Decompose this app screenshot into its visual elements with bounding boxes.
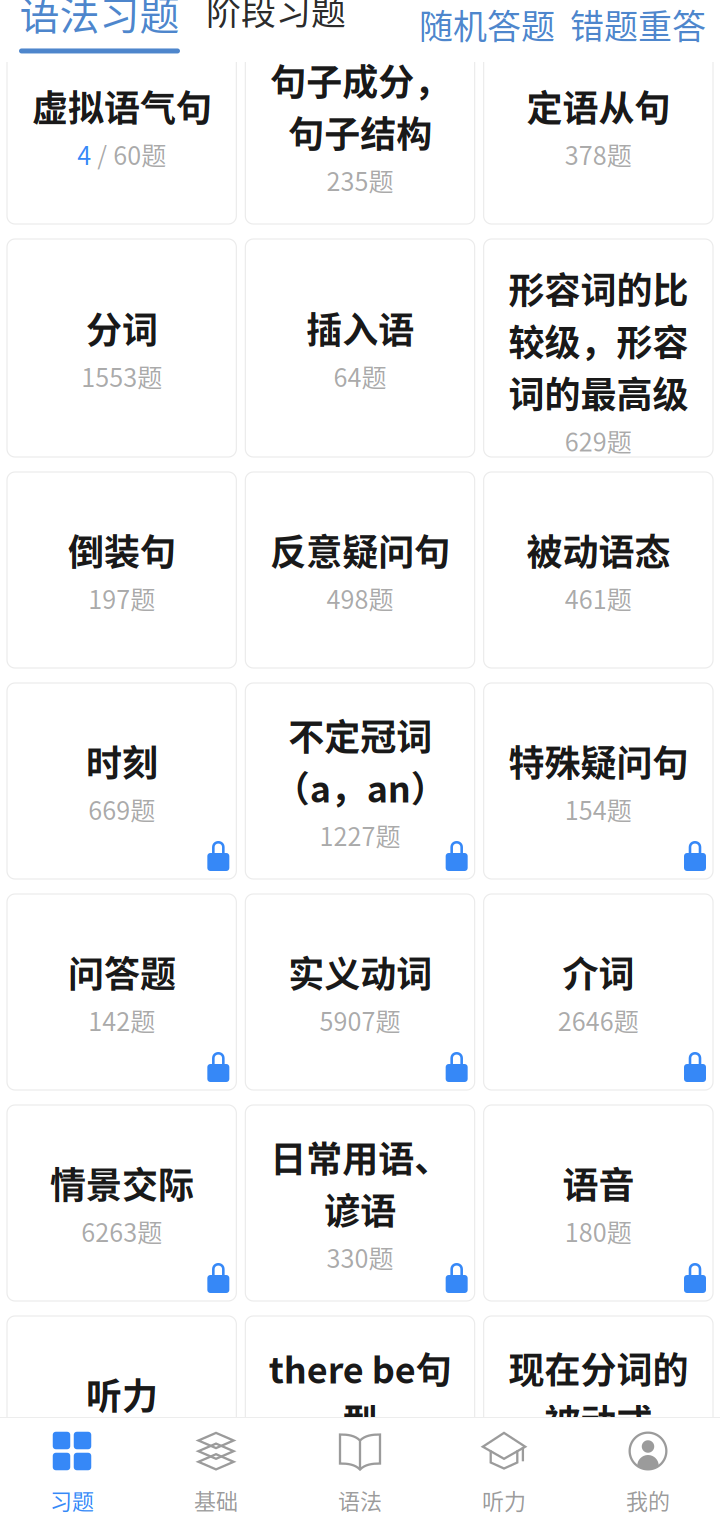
staticText: there be句型 [268,1342,451,1446]
staticText: 2870题 [81,1424,162,1460]
button[interactable]: 基础 [144,1418,288,1516]
staticText: 实义动词 [288,946,432,998]
staticText: 介词 [562,946,634,998]
staticText: 日常用语、谚语 [270,1131,450,1235]
staticText: 阶段习题 [206,0,346,35]
staticText: 629题 [565,422,632,459]
staticText: 1227题 [319,817,400,853]
button[interactable]: 语法 [288,1418,432,1516]
staticText: 197题 [88,580,155,616]
button[interactable]: 随机答题 [412,0,562,49]
button[interactable]: 实义动词 [245,894,475,1090]
staticText: 反意疑问句 [270,524,450,576]
staticText: 错题重答 [570,0,706,49]
staticText: 64题 [333,358,386,394]
button[interactable]: 被动语态 [484,472,713,668]
staticText: 基础 [194,1484,238,1516]
staticText: 情景交际 [50,1157,194,1209]
staticText: 语音 [562,1157,634,1209]
staticText: 378题 [565,136,632,172]
staticText: 随机答题 [419,0,555,49]
button[interactable]: 虚拟语气句 [7,28,236,224]
staticText: / [97,136,107,172]
staticText: 插入语 [306,302,414,354]
staticText: 句子成分，句子结构 [270,54,450,158]
button[interactable]: 倒装句 [7,472,236,668]
button[interactable]: 插入语 [245,239,475,457]
staticText: 669题 [88,791,155,827]
staticText: 60题 [113,136,166,172]
staticText: 266题 [326,1450,393,1486]
staticText: 5907题 [319,1002,400,1038]
staticText: 语法习题 [19,0,179,41]
staticText: 听力 [482,1484,526,1516]
staticText: 330题 [326,1239,393,1275]
button[interactable]: 情景交际 [7,1105,236,1301]
staticText: 特殊疑问句 [508,735,688,787]
staticText: 不定冠词（a，an） [273,709,446,813]
staticText: 4 [77,136,91,172]
staticText: 1553题 [81,358,162,394]
staticText: 习题 [50,1484,94,1516]
button[interactable]: 定语从句 [484,28,713,224]
button[interactable]: 介词 [484,894,713,1090]
staticText: 461题 [565,580,632,616]
staticText: 形容词的比较级，形容词的最高级 [508,262,688,418]
button[interactable]: 我的 [576,1418,720,1516]
staticText: 6263题 [81,1213,162,1249]
staticText: 时刻 [86,735,158,787]
button[interactable]: 习题 [0,1418,144,1516]
staticText: 154题 [565,791,632,827]
staticText: 听力 [86,1368,158,1420]
button[interactable]: 语法习题 [13,0,186,46]
button[interactable]: 日常用语、谚语 [245,1105,475,1301]
staticText: 倒装句 [68,524,176,576]
button[interactable]: 时刻 [7,683,236,879]
staticText: 2646题 [558,1002,639,1038]
staticText: 分词 [86,302,158,354]
button[interactable]: there be句型 [245,1316,475,1512]
button[interactable]: 现在分词的被动式 [484,1316,713,1512]
button[interactable]: 反意疑问句 [245,472,475,668]
staticText: 定语从句 [526,80,670,132]
staticText: 180题 [565,1213,632,1249]
button[interactable]: 阶段习题 [198,0,354,35]
button[interactable]: 句子成分，句子结构 [245,28,475,224]
button[interactable]: 听力 [432,1418,576,1516]
button[interactable]: 错题重答 [563,0,713,49]
staticText: 被动语态 [526,524,670,576]
button[interactable]: 形容词的比较级，形容词的最高级 [484,239,713,457]
button[interactable]: 语音 [484,1105,713,1301]
staticText: 我的 [626,1484,670,1516]
staticText: 问答题 [68,946,176,998]
button[interactable]: 不定冠词（a，an） [245,683,475,879]
staticText: 142题 [88,1002,155,1038]
staticText: 498题 [326,580,393,616]
button[interactable]: 特殊疑问句 [484,683,713,879]
staticText: 235题 [326,162,393,198]
button[interactable]: 问答题 [7,894,236,1090]
staticText: 虚拟语气句 [32,80,212,132]
button[interactable]: 听力 [7,1316,236,1512]
staticText: 现在分词的被动式 [508,1342,688,1446]
staticText: 语法 [338,1484,382,1516]
button[interactable]: 分词 [7,239,236,457]
